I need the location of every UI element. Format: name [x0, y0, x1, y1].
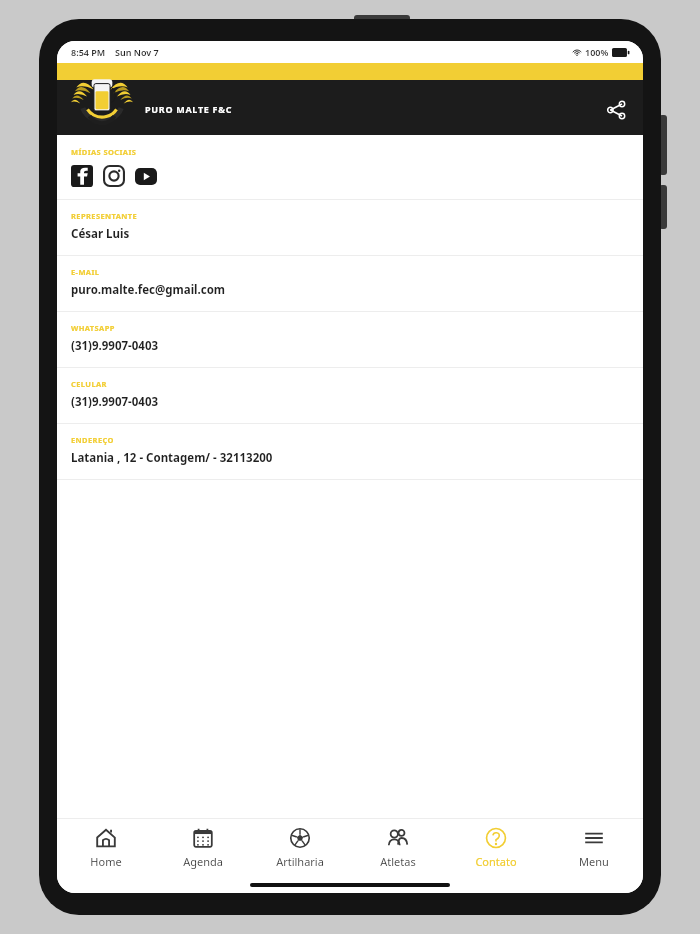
staticText: César Luis [71, 226, 130, 242]
staticText: WHATSAPP [71, 323, 115, 333]
button[interactable]: ENDEREÇO [57, 424, 643, 479]
button[interactable]: Artilharia [251, 819, 349, 877]
staticText: ENDEREÇO [71, 435, 114, 445]
staticText: MÍDIAS SOCIAIS [71, 147, 137, 157]
button[interactable]: Contato [447, 819, 545, 877]
staticText: 8:54 PM [71, 46, 106, 58]
button[interactable]: Home [57, 819, 154, 877]
staticText: CELULAR [71, 379, 107, 389]
staticText: Menu [579, 854, 609, 869]
button[interactable]: CELULAR [57, 368, 643, 423]
button[interactable]: Menu [545, 819, 643, 877]
staticText: (31)9.9907-0403 [71, 394, 159, 410]
button[interactable]: Compartilhar [599, 93, 633, 127]
staticText: REPRESENTANTE [71, 211, 138, 221]
button[interactable]: YouTube [135, 165, 157, 187]
button[interactable]: Atletas [349, 819, 447, 877]
staticText: (31)9.9907-0403 [71, 338, 159, 354]
staticText: Home [90, 854, 122, 869]
button[interactable]: Instagram [103, 165, 125, 187]
button[interactable]: REPRESENTANTE [57, 200, 643, 255]
staticText: Artilharia [276, 854, 324, 869]
staticText: Atletas [380, 854, 416, 869]
button[interactable]: WHATSAPP [57, 312, 643, 367]
staticText: Agenda [183, 854, 223, 869]
button[interactable]: Facebook [71, 165, 93, 187]
button[interactable]: E-MAIL [57, 256, 643, 311]
staticText: E-MAIL [71, 267, 100, 277]
staticText: Contato [475, 854, 517, 869]
button[interactable]: Escudo Puro Malte [71, 65, 133, 127]
staticText: puro.malte.fec@gmail.com [71, 282, 226, 298]
staticText: Sun Nov 7 [115, 46, 159, 58]
staticText: Latania , 12 - Contagem/ - 32113200 [71, 450, 273, 466]
button[interactable]: Agenda [154, 819, 251, 877]
staticText: 100% [585, 46, 609, 58]
staticText: PURO MALTE F&C [145, 103, 233, 115]
